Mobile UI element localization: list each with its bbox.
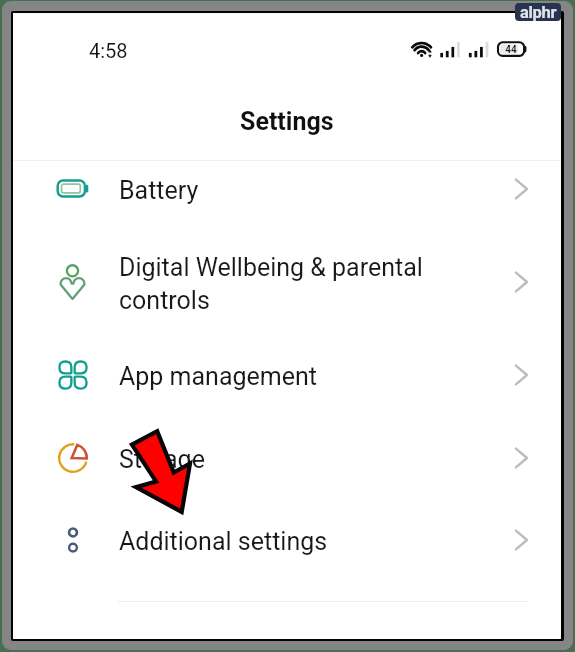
staticText: Additional settings — [119, 527, 328, 556]
staticText: App management — [119, 362, 317, 391]
button[interactable]: Additional settings — [13, 498, 561, 581]
button[interactable]: Digital Wellbeing & parental controls — [13, 224, 561, 339]
button[interactable]: Battery — [13, 147, 561, 230]
staticText: Digital Wellbeing & parental controls — [119, 253, 423, 315]
staticText: 44 — [498, 44, 524, 56]
staticText: Storage — [119, 445, 205, 474]
staticText: alphr — [520, 3, 557, 21]
staticText: 4:58 — [89, 39, 128, 62]
staticText: Settings — [240, 107, 334, 136]
staticText: Battery — [119, 176, 199, 205]
button[interactable]: App management — [13, 333, 561, 416]
button[interactable]: Storage — [13, 416, 561, 499]
